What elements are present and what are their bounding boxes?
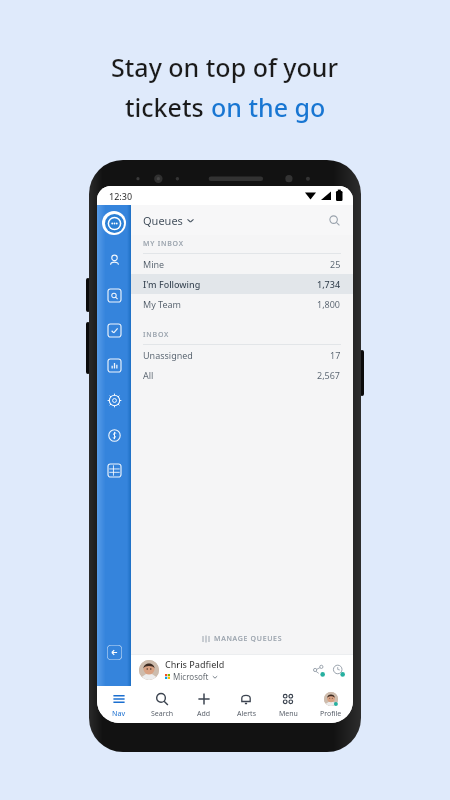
button[interactable]: Mine (131, 254, 353, 274)
button[interactable]: Navigation item (105, 286, 123, 304)
button[interactable]: All (131, 365, 353, 385)
button[interactable]: Unassigned (131, 345, 353, 365)
staticText: Stay on top of your (111, 50, 339, 84)
staticText: 2,567 (317, 369, 341, 381)
button[interactable]: Queues (131, 205, 353, 235)
staticText: Add (197, 709, 211, 719)
staticText: on the go (211, 90, 326, 124)
button[interactable]: Navigation item (105, 426, 123, 444)
button[interactable]: Search (142, 691, 182, 719)
staticText: I'm Following (143, 278, 201, 290)
staticText: 12:30 (109, 190, 133, 202)
staticText: Unassigned (143, 349, 193, 361)
staticText: Search (151, 709, 174, 719)
staticText: INBOX (143, 330, 170, 340)
staticText: MY INBOX (143, 239, 184, 249)
button[interactable]: My Team (131, 294, 353, 314)
button[interactable]: Search (325, 211, 343, 229)
button[interactable]: Navigation item (105, 321, 123, 339)
staticText: All (143, 369, 154, 381)
button[interactable]: Navigation item (105, 356, 123, 374)
button[interactable]: Add (184, 691, 224, 719)
button[interactable]: Share status (311, 663, 325, 677)
button[interactable]: Navigation item (105, 461, 123, 479)
staticText: Microsoft (173, 671, 209, 682)
button[interactable]: I'm Following (131, 274, 353, 294)
button[interactable]: Nav (99, 691, 139, 719)
staticText: tickets (125, 90, 211, 124)
staticText: Alerts (237, 709, 256, 719)
button[interactable]: Chris Padfield (131, 654, 353, 686)
button[interactable]: MANAGE QUEUES (131, 628, 353, 650)
button[interactable]: Profile (311, 691, 351, 719)
staticText: 25 (330, 258, 341, 270)
staticText: 1,734 (317, 278, 341, 290)
staticText: Menu (279, 709, 298, 719)
button[interactable]: App logo (102, 211, 126, 235)
staticText: Profile (320, 709, 342, 719)
button[interactable]: Presence status (331, 663, 345, 677)
button[interactable]: Navigation item (105, 251, 123, 269)
staticText: MANAGE QUEUES (214, 634, 283, 644)
button[interactable]: Collapse navigation (107, 645, 122, 660)
staticText: Nav (112, 709, 126, 719)
button[interactable]: Menu (268, 691, 308, 719)
staticText: Queues (143, 213, 183, 228)
staticText: 1,800 (317, 298, 341, 310)
staticText: My Team (143, 298, 182, 310)
staticText: 17 (330, 349, 341, 361)
staticText: Chris Padfield (165, 658, 225, 670)
button[interactable]: Alerts (226, 691, 266, 719)
button[interactable]: Navigation item (105, 391, 123, 409)
staticText: Mine (143, 258, 165, 270)
